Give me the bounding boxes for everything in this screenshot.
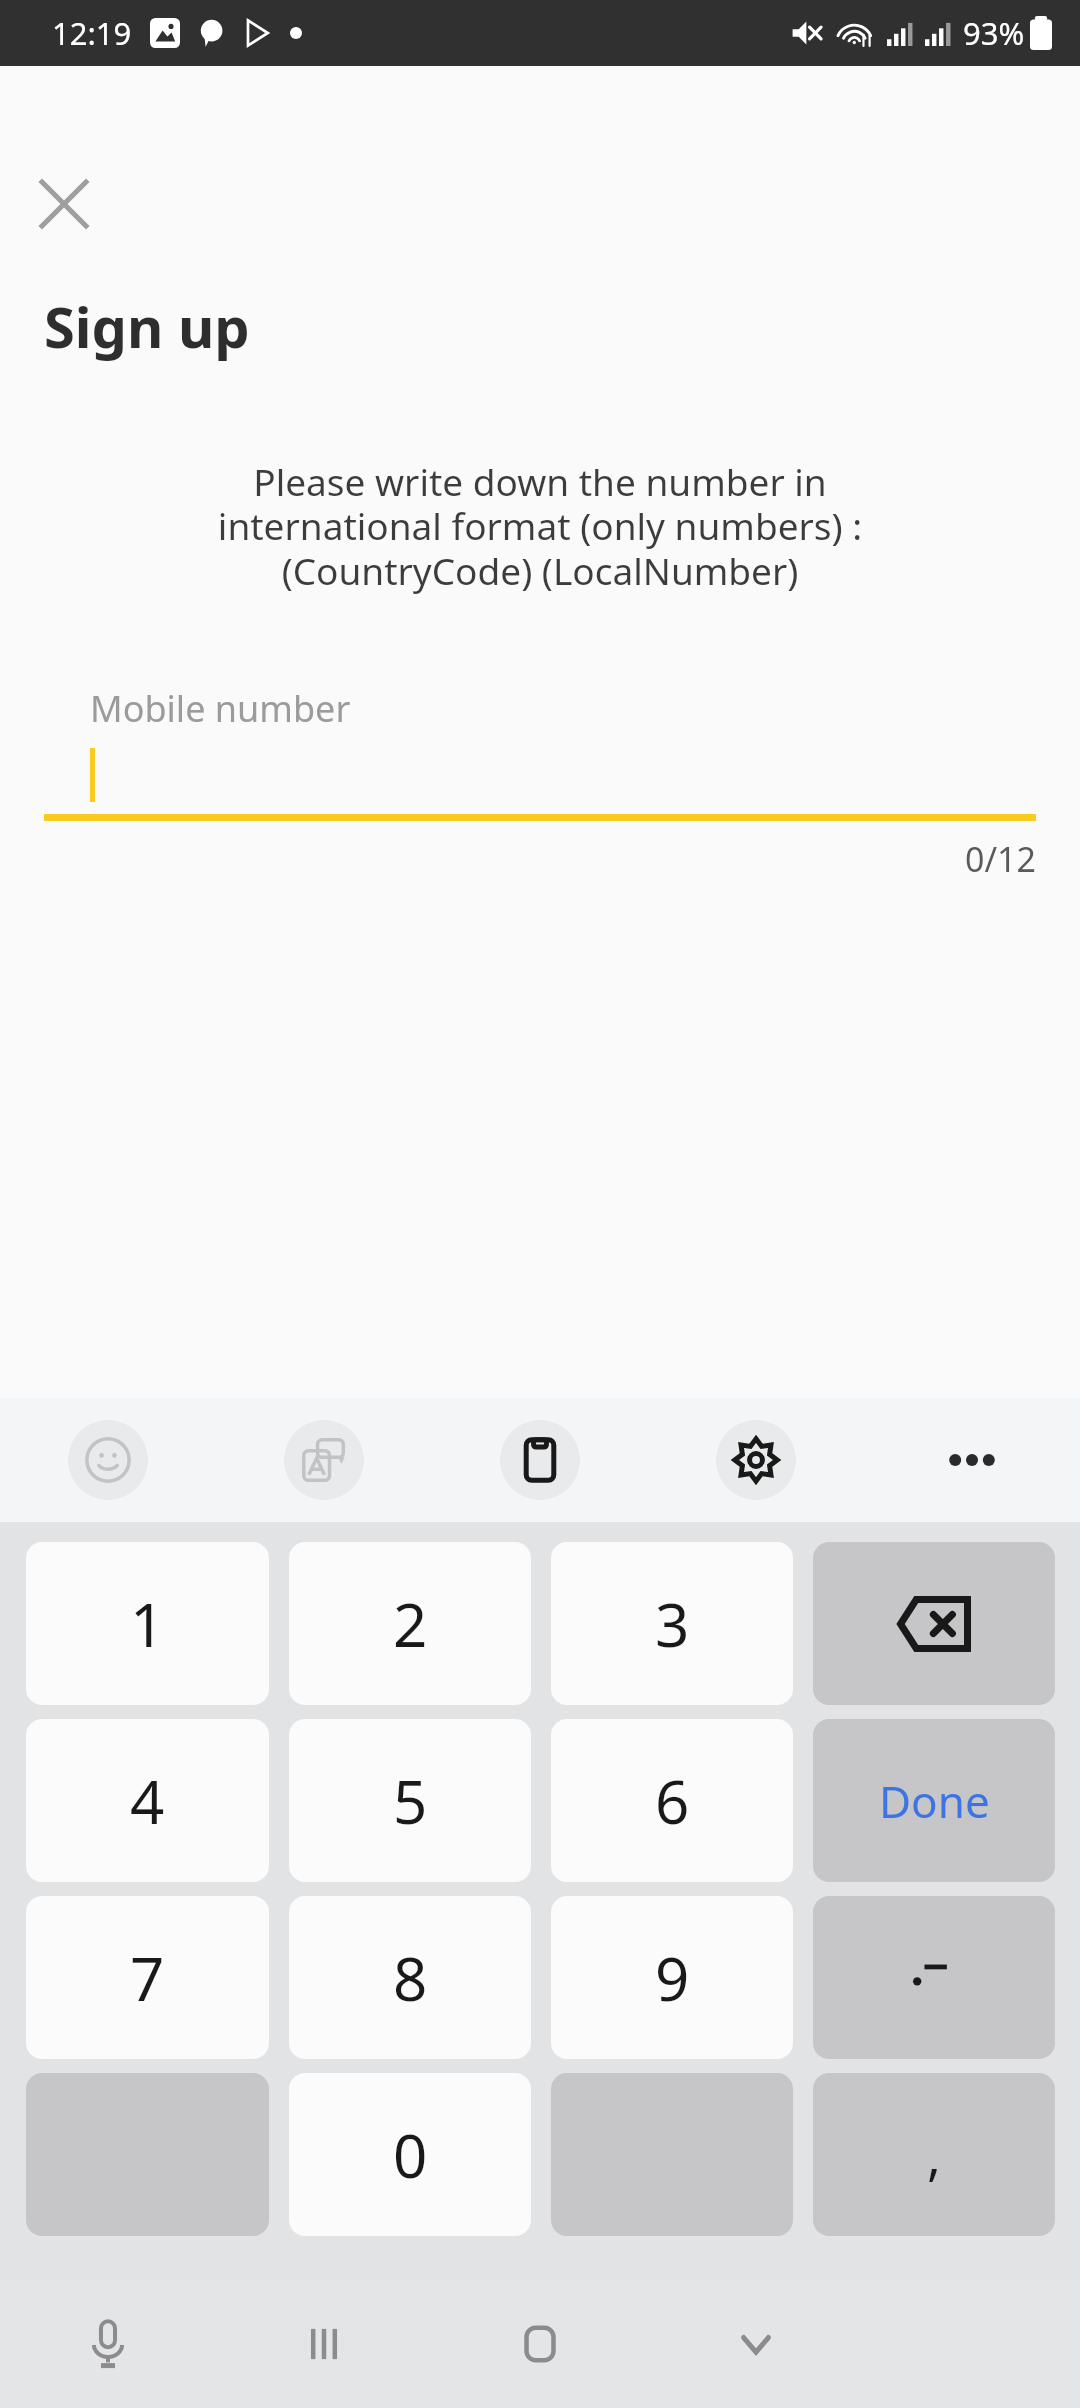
staticText: 3 bbox=[655, 1583, 690, 1665]
button[interactable]: Hide keyboard bbox=[648, 2280, 864, 2408]
button[interactable]: Done bbox=[813, 1719, 1055, 1882]
button[interactable]: 6 bbox=[551, 1719, 793, 1882]
button[interactable]: Home bbox=[432, 2280, 648, 2408]
staticText: Done bbox=[879, 1771, 990, 1831]
button[interactable]: Keyboard settings bbox=[648, 1398, 864, 1522]
staticText: 8 bbox=[393, 1937, 428, 2019]
button[interactable]: 5 bbox=[289, 1719, 531, 1882]
staticText: 0 bbox=[393, 2114, 428, 2196]
staticText: Sign up bbox=[44, 288, 250, 364]
button[interactable]: Backspace bbox=[813, 1542, 1055, 1705]
button[interactable]: More options bbox=[864, 1398, 1080, 1522]
staticText: 93% bbox=[963, 12, 1025, 54]
button[interactable]: , bbox=[813, 2073, 1055, 2236]
staticText: 7 bbox=[130, 1937, 165, 2019]
staticText: 6 bbox=[655, 1760, 690, 1842]
button[interactable]: 0 bbox=[289, 2073, 531, 2236]
staticText: 4 bbox=[130, 1760, 165, 1842]
button[interactable]: Clipboard bbox=[432, 1398, 648, 1522]
staticText: 0/12 bbox=[0, 836, 1036, 882]
button[interactable]: 4 bbox=[26, 1719, 269, 1882]
button[interactable]: Close bbox=[22, 162, 106, 246]
button[interactable]: Recent apps bbox=[216, 2280, 432, 2408]
staticText: 2 bbox=[393, 1583, 428, 1665]
staticText: 1 bbox=[130, 1583, 165, 1665]
button[interactable]: 1 bbox=[26, 1542, 269, 1705]
button[interactable]: Emoji bbox=[0, 1398, 216, 1522]
staticText: Mobile number bbox=[90, 684, 351, 733]
button[interactable]: 8 bbox=[289, 1896, 531, 2059]
button[interactable]: 9 bbox=[551, 1896, 793, 2059]
staticText: Please write down the number in internat… bbox=[55, 456, 1025, 596]
staticText: , bbox=[927, 2119, 941, 2190]
button[interactable]: Period and dash bbox=[813, 1896, 1055, 2059]
button[interactable]: 2 bbox=[289, 1542, 531, 1705]
button[interactable]: Translate bbox=[216, 1398, 432, 1522]
staticText: 9 bbox=[655, 1937, 690, 2019]
button[interactable]: Voice input bbox=[0, 2280, 216, 2408]
staticText: 5 bbox=[393, 1760, 428, 1842]
staticText: 12:19 bbox=[52, 12, 132, 54]
button[interactable]: 7 bbox=[26, 1896, 269, 2059]
button[interactable]: 3 bbox=[551, 1542, 793, 1705]
